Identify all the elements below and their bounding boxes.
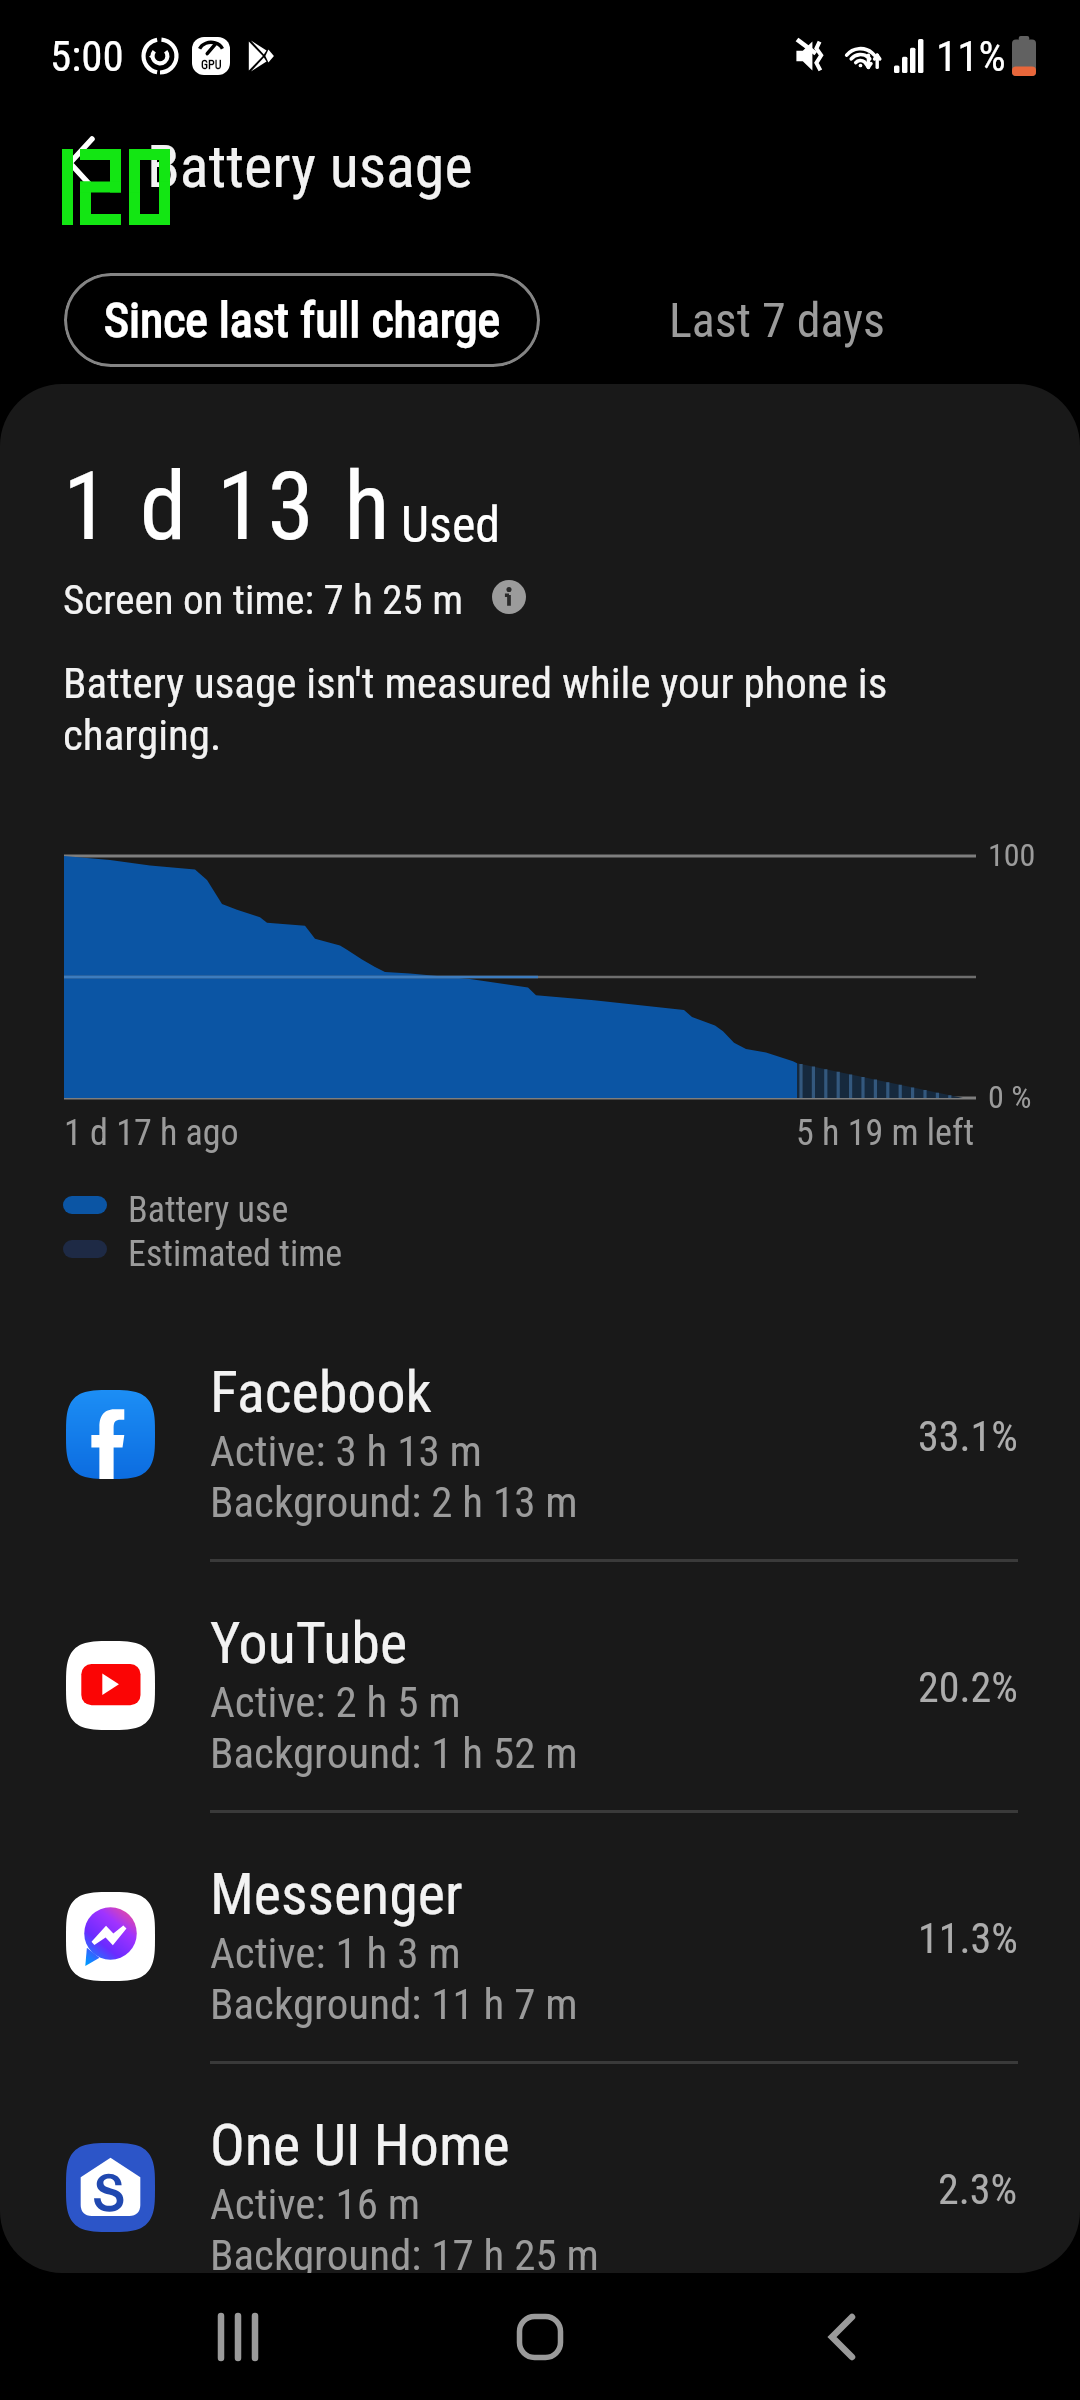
- staticText: Active: 2 h 5 m: [210, 1677, 461, 1728]
- staticText: One UI Home: [210, 2114, 510, 2179]
- button[interactable]: Recents: [178, 2277, 298, 2397]
- staticText: Last 7 days: [669, 292, 885, 348]
- staticText: 1 d 13 h: [63, 452, 395, 562]
- staticText: Messenger: [210, 1863, 463, 1928]
- staticText: Used: [401, 496, 501, 555]
- staticText: 5 h 19 m left: [796, 1112, 975, 1154]
- staticText: Active: 16 m: [210, 2179, 421, 2230]
- staticText: Estimated time: [128, 1233, 343, 1275]
- staticText: Screen on time: 7 h 25 m: [63, 576, 464, 624]
- button[interactable]: Navigate up: [31, 113, 131, 213]
- staticText: Active: 3 h 13 m: [210, 1426, 482, 1477]
- staticText: Since last full charge: [104, 292, 501, 348]
- staticText: Battery use: [128, 1189, 289, 1231]
- staticText: Active: 1 h 3 m: [210, 1928, 461, 1979]
- button[interactable]: Since last full charge: [64, 273, 540, 367]
- staticText: 33.1%: [918, 1412, 1018, 1461]
- button[interactable]: Last 7 days: [640, 273, 914, 367]
- button[interactable]: One UI Home: [0, 2064, 1080, 2273]
- staticText: YouTube: [210, 1612, 408, 1677]
- staticText: 11%: [936, 31, 1006, 81]
- staticText: 20.2%: [918, 1663, 1018, 1712]
- staticText: 11.3%: [918, 1914, 1018, 1963]
- button[interactable]: YouTube: [0, 1562, 1080, 1813]
- staticText: Battery usage isn't measured while your …: [63, 657, 973, 761]
- staticText: 1 d 17 h ago: [64, 1112, 239, 1154]
- staticText: Background: 11 h 7 m: [210, 1979, 578, 2030]
- staticText: Background: 17 h 25 m: [210, 2230, 599, 2273]
- staticText: 0 %: [988, 1078, 1032, 1116]
- staticText: GPU: [201, 58, 222, 72]
- staticText: Background: 2 h 13 m: [210, 1477, 578, 1528]
- button[interactable]: Home: [480, 2277, 600, 2397]
- staticText: 100: [988, 836, 1036, 874]
- staticText: Background: 1 h 52 m: [210, 1728, 578, 1779]
- staticText: Battery usage: [147, 131, 473, 201]
- staticText: 5:00: [50, 31, 124, 81]
- button[interactable]: Messenger: [0, 1813, 1080, 2064]
- button[interactable]: Facebook: [0, 1311, 1080, 1562]
- staticText: Facebook: [210, 1361, 432, 1426]
- button[interactable]: Back: [782, 2277, 902, 2397]
- button[interactable]: More information: [492, 580, 526, 614]
- staticText: 2.3%: [938, 2165, 1018, 2214]
